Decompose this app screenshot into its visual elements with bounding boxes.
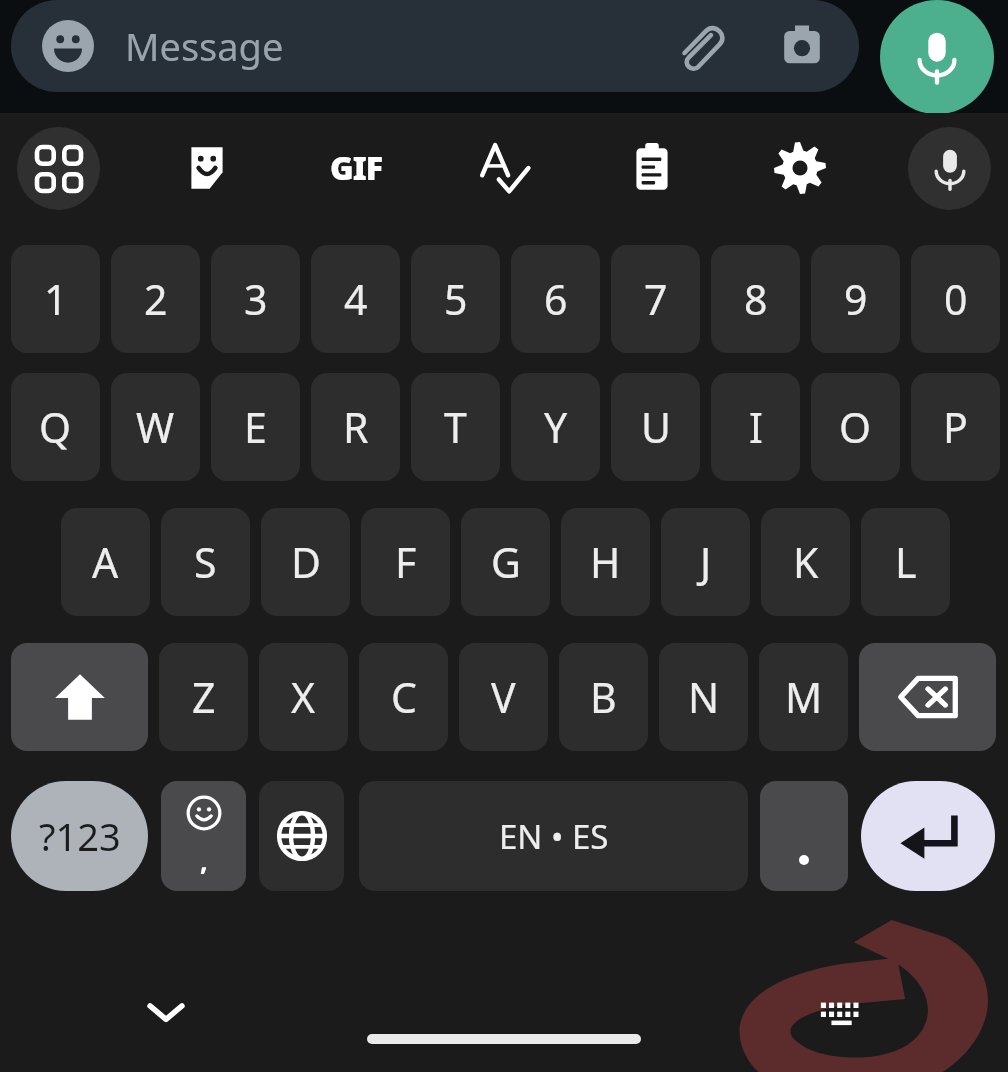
staticText: N (688, 669, 720, 725)
staticText: S (194, 534, 217, 590)
staticText: L (895, 534, 917, 590)
staticText: 6 (544, 271, 568, 327)
button[interactable]: Keyboard menu (17, 127, 100, 210)
button[interactable]: R (311, 373, 400, 481)
button[interactable]: Emoji (42, 20, 94, 72)
button[interactable]: 3 (211, 245, 300, 353)
staticText: D (291, 534, 321, 590)
button[interactable]: W (111, 373, 200, 481)
button[interactable]: L (861, 508, 950, 616)
button[interactable]: 8 (711, 245, 800, 353)
staticText: F (395, 534, 417, 590)
staticText: B (590, 669, 617, 725)
staticText: 9 (844, 271, 868, 327)
button[interactable]: C (359, 643, 448, 751)
staticText: E (244, 399, 267, 455)
staticText: V (491, 669, 516, 725)
staticText: EN • ES (499, 814, 609, 859)
button[interactable]: P (911, 373, 1000, 481)
button[interactable]: ?123 (11, 781, 148, 891)
staticText: Message (125, 20, 284, 72)
button[interactable]: S (161, 508, 250, 616)
button[interactable]: K (761, 508, 850, 616)
button[interactable]: Emoji (161, 781, 246, 891)
button[interactable]: A (61, 508, 150, 616)
staticText: 3 (244, 271, 268, 327)
button[interactable]: Backspace (859, 643, 996, 751)
button[interactable]: 9 (811, 245, 900, 353)
button[interactable]: D (261, 508, 350, 616)
staticText: 7 (644, 271, 668, 327)
staticText: A (92, 534, 119, 590)
button[interactable]: Space (359, 781, 748, 891)
button[interactable]: E (211, 373, 300, 481)
button[interactable]: B (559, 643, 648, 751)
staticText: U (641, 399, 671, 455)
button[interactable]: Voice input (908, 127, 991, 210)
button[interactable]: F (361, 508, 450, 616)
button[interactable]: Z (159, 643, 248, 751)
staticText: P (943, 399, 968, 455)
button[interactable]: 2 (111, 245, 200, 353)
button[interactable]: J (661, 508, 750, 616)
button[interactable]: 6 (511, 245, 600, 353)
button[interactable]: I (711, 373, 800, 481)
button[interactable]: 7 (611, 245, 700, 353)
staticText: G (491, 534, 521, 590)
staticText: 1 (44, 271, 68, 327)
button[interactable]: Shift (11, 643, 148, 751)
button[interactable]: 4 (311, 245, 400, 353)
button[interactable]: H (561, 508, 650, 616)
button[interactable]: Clipboard (618, 134, 686, 202)
button[interactable]: M (759, 643, 848, 751)
staticText: 2 (144, 271, 168, 327)
staticText: O (839, 399, 872, 455)
staticText: T (444, 399, 467, 455)
button[interactable]: 0 (911, 245, 1000, 353)
button[interactable]: GIF (322, 134, 390, 202)
staticText: C (391, 669, 417, 725)
staticText: W (136, 399, 175, 455)
staticText: Z (192, 669, 216, 725)
button[interactable] (760, 781, 848, 891)
staticText: X (291, 669, 316, 725)
staticText: J (700, 534, 712, 590)
button[interactable]: Spell check (470, 134, 538, 202)
staticText: Q (39, 399, 72, 455)
button[interactable]: Settings (766, 134, 834, 202)
staticText: K (793, 534, 819, 590)
staticText: , (200, 842, 208, 879)
button[interactable]: Emoji (11, 0, 859, 92)
button[interactable]: Attach file (671, 19, 725, 73)
button[interactable]: Enter (861, 781, 995, 891)
button[interactable]: 5 (411, 245, 500, 353)
button[interactable]: Camera (775, 19, 829, 73)
staticText: Y (544, 399, 568, 455)
button[interactable]: Hide keyboard (139, 984, 193, 1038)
button[interactable]: Change language (259, 781, 344, 891)
staticText: 8 (744, 271, 768, 327)
staticText: H (590, 534, 621, 590)
button[interactable]: Stickers (173, 134, 241, 202)
staticText: GIF (330, 146, 383, 190)
staticText: I (749, 399, 763, 455)
staticText: ?123 (39, 810, 121, 862)
button[interactable]: X (259, 643, 348, 751)
staticText: M (785, 669, 823, 725)
button[interactable]: Y (511, 373, 600, 481)
staticText: 4 (344, 271, 368, 327)
staticText: 0 (944, 271, 968, 327)
button[interactable]: O (811, 373, 900, 481)
button[interactable]: G (461, 508, 550, 616)
button[interactable]: Q (11, 373, 100, 481)
button[interactable]: V (459, 643, 548, 751)
button[interactable]: N (659, 643, 748, 751)
staticText: R (343, 399, 369, 455)
button[interactable]: Record voice message (880, 0, 994, 114)
staticText: 5 (444, 271, 468, 327)
button[interactable]: 1 (11, 245, 100, 353)
button[interactable]: U (611, 373, 700, 481)
button[interactable]: T (411, 373, 500, 481)
